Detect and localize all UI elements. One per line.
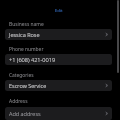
button[interactable]: Edit: [55, 8, 63, 14]
staticText: Categories: [9, 72, 34, 79]
button[interactable]: Add address: [5, 107, 112, 120]
staticText: Address: [9, 98, 28, 105]
staticText: +1 (608) 421-0019: [9, 56, 109, 64]
staticText: Business name: [9, 21, 44, 28]
button[interactable]: Jessica Rose: [5, 29, 112, 40]
staticText: Add address: [9, 110, 104, 118]
staticText: Escrow Service: [9, 82, 104, 90]
staticText: Jessica Rose: [9, 31, 104, 39]
staticText: Phone number: [9, 46, 44, 53]
button[interactable]: Escrow Service: [5, 80, 112, 91]
button[interactable]: +1 (608) 421-0019: [5, 54, 112, 65]
